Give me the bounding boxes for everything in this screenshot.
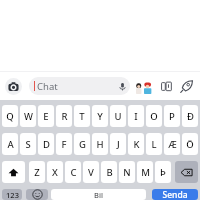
staticText: A bbox=[7, 138, 14, 151]
staticText: Q bbox=[6, 110, 14, 123]
staticText: C bbox=[70, 166, 77, 179]
staticText: Y bbox=[97, 110, 103, 123]
button[interactable]: Stickers bbox=[159, 79, 173, 93]
button[interactable]: N bbox=[119, 161, 135, 183]
staticText: M bbox=[141, 166, 150, 179]
button[interactable]: Ö bbox=[182, 133, 198, 155]
button[interactable]: Backspace bbox=[175, 161, 198, 183]
staticText: V bbox=[88, 166, 94, 179]
button[interactable]: Q bbox=[2, 105, 18, 127]
staticText: I bbox=[134, 110, 138, 123]
button[interactable]: Æ bbox=[164, 133, 180, 155]
button[interactable]: Senda bbox=[152, 189, 198, 200]
button[interactable]: M bbox=[137, 161, 153, 183]
button[interactable]: F bbox=[56, 133, 72, 155]
button[interactable]: G bbox=[74, 133, 90, 155]
button[interactable]: O bbox=[146, 105, 162, 127]
staticText: Senda bbox=[162, 189, 188, 200]
staticText: Ð bbox=[187, 110, 194, 123]
button[interactable]: T bbox=[74, 105, 90, 127]
staticText: Z bbox=[34, 166, 40, 179]
button[interactable]: Y bbox=[92, 105, 108, 127]
button[interactable]: L bbox=[146, 133, 162, 155]
staticText: U bbox=[114, 110, 122, 123]
button[interactable]: E bbox=[38, 105, 54, 127]
button[interactable]: K bbox=[128, 133, 144, 155]
staticText: N bbox=[123, 166, 131, 179]
button[interactable]: H bbox=[92, 133, 108, 155]
staticText: Chat bbox=[37, 80, 58, 93]
button[interactable]: Shift bbox=[2, 161, 25, 183]
staticText: Bil bbox=[94, 190, 103, 200]
button[interactable]: Z bbox=[29, 161, 45, 183]
staticText: E bbox=[43, 110, 49, 123]
staticText: W bbox=[24, 110, 33, 123]
button[interactable]: C bbox=[65, 161, 81, 183]
button[interactable]: Avatar stickers bbox=[135, 78, 152, 95]
button[interactable]: W bbox=[20, 105, 36, 127]
button[interactable]: Emoji bbox=[26, 189, 48, 200]
staticText: R bbox=[61, 110, 68, 123]
button[interactable]: Ð bbox=[182, 105, 198, 127]
other: Emoji bbox=[32, 189, 43, 200]
staticText: B bbox=[106, 166, 113, 179]
button[interactable]: Chat bbox=[29, 77, 130, 95]
button[interactable]: D bbox=[38, 133, 54, 155]
button[interactable]: Rocket bbox=[179, 79, 194, 94]
button[interactable]: J bbox=[110, 133, 126, 155]
button[interactable]: U bbox=[110, 105, 126, 127]
staticText: H bbox=[96, 138, 104, 151]
staticText: J bbox=[117, 138, 120, 151]
button[interactable]: A bbox=[2, 133, 18, 155]
staticText: P bbox=[169, 110, 175, 123]
other: Backspace bbox=[180, 166, 193, 179]
button[interactable]: P bbox=[164, 105, 180, 127]
staticText: S bbox=[25, 138, 31, 151]
button[interactable]: Camera bbox=[5, 78, 22, 95]
button[interactable]: V bbox=[83, 161, 99, 183]
button[interactable]: B bbox=[101, 161, 117, 183]
button[interactable]: R bbox=[56, 105, 72, 127]
button[interactable]: Voice message bbox=[115, 79, 129, 93]
staticText: G bbox=[79, 138, 86, 151]
button[interactable]: Þ bbox=[155, 161, 171, 183]
staticText: Æ bbox=[168, 138, 177, 151]
staticText: T bbox=[79, 110, 85, 123]
staticText: 123 bbox=[6, 190, 19, 200]
button[interactable]: 123 bbox=[2, 189, 22, 200]
button[interactable]: X bbox=[47, 161, 63, 183]
staticText: F bbox=[61, 138, 67, 151]
staticText: D bbox=[43, 138, 50, 151]
button[interactable]: I bbox=[128, 105, 144, 127]
button[interactable]: Bil bbox=[51, 189, 146, 200]
staticText: Þ bbox=[160, 166, 166, 179]
staticText: Ö bbox=[186, 138, 194, 151]
staticText: O bbox=[150, 110, 158, 123]
staticText: L bbox=[151, 138, 157, 151]
staticText: K bbox=[133, 138, 140, 151]
other: Shift bbox=[8, 167, 19, 178]
button[interactable]: S bbox=[20, 133, 36, 155]
staticText: X bbox=[52, 166, 58, 179]
